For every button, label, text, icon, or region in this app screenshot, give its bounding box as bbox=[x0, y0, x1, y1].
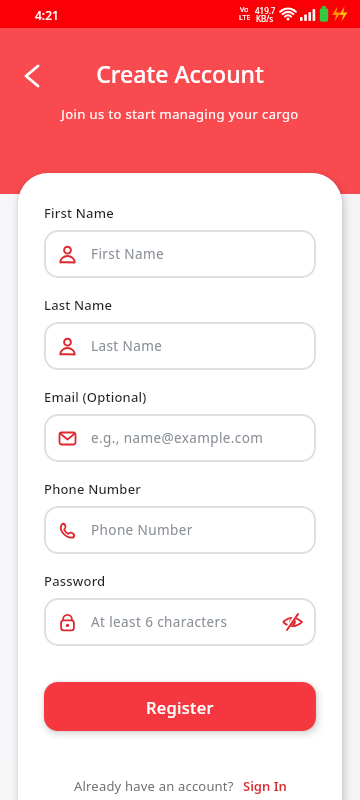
staticText: 419.7 bbox=[255, 5, 276, 16]
button[interactable] bbox=[12, 56, 52, 96]
staticText: Password bbox=[44, 572, 106, 590]
staticText: First Name bbox=[44, 204, 114, 222]
button[interactable]: First Name bbox=[44, 230, 316, 278]
button[interactable]: Register bbox=[44, 682, 316, 731]
staticText: Email (Optional) bbox=[44, 388, 147, 406]
staticText: Create Account bbox=[0, 58, 360, 89]
staticText: Last Name bbox=[44, 296, 113, 314]
staticText: 4:21 bbox=[35, 7, 59, 23]
button[interactable]: Phone Number bbox=[44, 506, 316, 554]
staticText: First Name bbox=[91, 245, 164, 263]
staticText: KB/s bbox=[256, 13, 273, 24]
staticText: e.g., name@example.com bbox=[91, 429, 264, 447]
staticText: Phone Number bbox=[91, 521, 193, 539]
staticText: LTE bbox=[239, 13, 251, 23]
staticText: Phone Number bbox=[44, 480, 141, 498]
button[interactable]: At least 6 characters bbox=[44, 598, 316, 646]
staticText: Join us to start managing your cargo bbox=[0, 105, 360, 123]
button[interactable]: e.g., name@example.com bbox=[44, 414, 316, 462]
staticText: At least 6 characters bbox=[91, 613, 228, 631]
staticText: Register bbox=[146, 696, 214, 718]
button[interactable]: Sign In bbox=[243, 777, 287, 795]
staticText: Already have an account? bbox=[74, 777, 234, 795]
button[interactable]: Last Name bbox=[44, 322, 316, 370]
staticText: Last Name bbox=[91, 337, 163, 355]
staticText: Vo bbox=[240, 5, 249, 15]
